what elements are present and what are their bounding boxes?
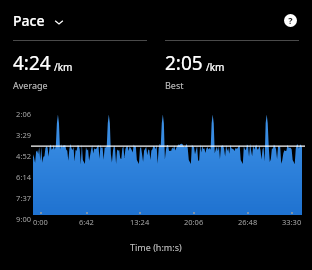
staticText: 26:48 xyxy=(238,217,258,227)
staticText: Time (h:m:s) xyxy=(130,241,182,253)
staticText: 4:24 xyxy=(13,50,51,76)
staticText: 33:30 xyxy=(282,217,302,227)
staticText: Pace xyxy=(13,11,45,30)
staticText: 2:06 xyxy=(16,109,31,119)
staticText: 6:42 xyxy=(79,217,94,227)
staticText: 9:00 xyxy=(16,214,31,224)
staticText: 13:24 xyxy=(130,217,150,227)
button[interactable]: Help xyxy=(280,10,300,30)
button[interactable]: 4:24 xyxy=(13,40,147,91)
staticText: /km xyxy=(54,60,73,74)
staticText: 7:37 xyxy=(16,193,31,203)
staticText: /km xyxy=(206,60,225,74)
button[interactable]: Pace xyxy=(13,11,71,30)
staticText: Average xyxy=(13,79,48,91)
staticText: 20:06 xyxy=(184,217,204,227)
staticText: 4:52 xyxy=(16,151,31,161)
staticText: 2:05 xyxy=(165,50,203,76)
staticText: 6:14 xyxy=(16,172,31,182)
staticText: 3:29 xyxy=(16,130,31,140)
button[interactable]: 2:05 xyxy=(165,40,299,91)
staticText: Best xyxy=(165,79,184,91)
staticText: ? xyxy=(288,14,293,26)
staticText: 0:00 xyxy=(33,217,48,227)
